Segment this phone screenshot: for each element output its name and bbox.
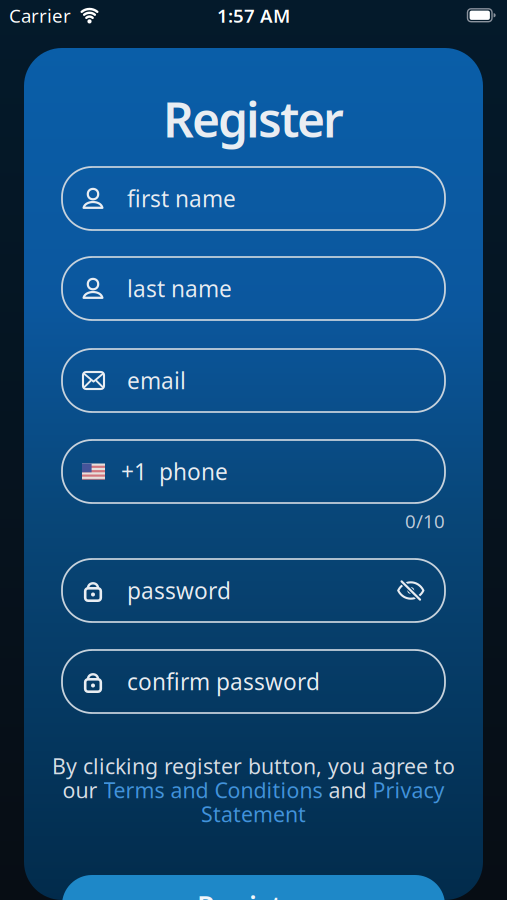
button[interactable]: Terms and Conditions: [103, 776, 322, 804]
button[interactable]: last name: [62, 257, 445, 320]
staticText: our: [62, 776, 103, 804]
staticText: Terms and Conditions: [103, 776, 322, 804]
button[interactable]: Statement: [201, 802, 306, 826]
button[interactable]: password: [62, 559, 445, 622]
staticText: +1 phone: [121, 456, 228, 486]
staticText: Register: [163, 87, 344, 151]
staticText: email: [127, 365, 186, 395]
staticText: Carrier: [9, 3, 71, 28]
staticText: confirm password: [127, 666, 320, 696]
staticText: last name: [127, 273, 232, 303]
button[interactable]: +1 phone: [62, 440, 445, 503]
staticText: password: [127, 575, 231, 605]
staticText: Statement: [201, 800, 306, 828]
staticText: first name: [127, 183, 236, 213]
staticText: By clicking register button, you agree t…: [52, 752, 455, 780]
button[interactable]: first name: [62, 167, 445, 230]
button[interactable]: email: [62, 349, 445, 412]
staticText: Register: [197, 888, 310, 900]
staticText: and: [322, 776, 372, 804]
staticText: 1:57 AM: [217, 3, 290, 28]
button[interactable]: Privacy: [372, 776, 444, 804]
button[interactable]: Register: [62, 875, 445, 900]
staticText: Privacy: [372, 776, 444, 804]
staticText: 0/10: [405, 509, 445, 533]
button[interactable]: confirm password: [62, 650, 445, 713]
button[interactable]: Show password: [397, 580, 425, 601]
